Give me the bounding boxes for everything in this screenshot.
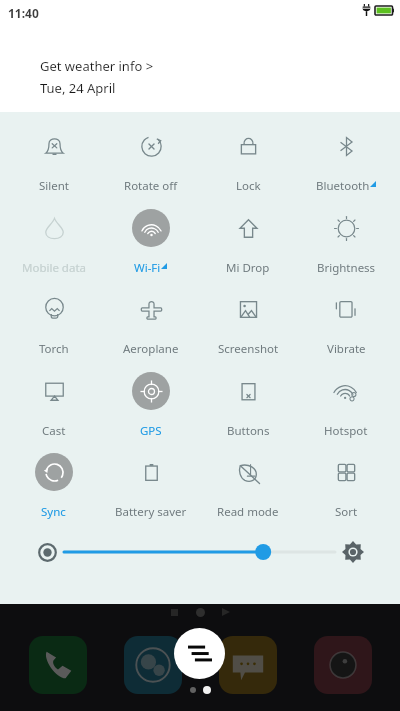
staticText: Lock [236,178,261,194]
staticText: Mi Drop [226,260,270,276]
staticText: Mobile data [22,260,86,276]
button[interactable]: Lock [199,126,297,198]
button[interactable]: Messaging [219,636,277,694]
button[interactable]: Browser [124,636,182,694]
staticText: Sort [335,504,358,520]
button[interactable]: Home [187,605,213,619]
button[interactable]: Sync [5,452,102,524]
staticText: GPS [140,423,162,439]
button[interactable]: Camera [314,636,372,694]
button[interactable]: Mi Drop [199,208,297,280]
staticText: Battery saver [115,504,187,520]
staticText: Tue, 24 April [40,79,116,97]
staticText: Rotate off [124,178,178,194]
staticText: Read mode [217,504,279,520]
staticText: Torch [39,341,69,357]
staticText: Screenshot [218,341,279,357]
button[interactable]: Hotspot [297,371,395,443]
button[interactable]: Vibrate [297,289,395,361]
button[interactable]: Auto brightness [35,540,59,564]
staticText: 11:40 [8,5,39,21]
button[interactable]: Read mode [199,452,297,524]
staticText: Sync [41,504,66,520]
button[interactable]: Cast [5,371,102,443]
button[interactable]: Silent [5,126,102,198]
staticText: Aeroplane [123,341,179,357]
button[interactable]: Get weather info > [40,57,154,75]
staticText: Buttons [227,423,270,439]
staticText: Cast [42,423,66,439]
button[interactable]: Wi-Fi [102,208,199,280]
staticText: Hotspot [324,423,368,439]
button[interactable]: Rotate off [102,126,199,198]
button[interactable]: Recents [161,605,187,619]
staticText: Bluetooth [316,178,370,194]
button[interactable]: Aeroplane [102,289,199,361]
button[interactable]: Back [213,605,239,619]
button[interactable]: Brightness settings [341,540,365,564]
button[interactable]: Torch [5,289,102,361]
button[interactable]: Mobile data [5,208,102,280]
staticText: Wi-Fi [134,260,161,276]
staticText: Brightness [317,260,376,276]
button[interactable]: Phone [29,636,87,694]
staticText: Silent [39,178,69,194]
button[interactable]: Brightness slider [64,542,335,562]
button[interactable]: Quick settings shortcut [174,628,225,679]
staticText: Vibrate [327,341,366,357]
button[interactable]: Sort [297,452,395,524]
button[interactable]: Bluetooth [297,126,395,198]
button[interactable]: Screenshot [199,289,297,361]
button[interactable]: Buttons [199,371,297,443]
button[interactable]: GPS [102,371,199,443]
button[interactable]: Battery saver [102,452,199,524]
button[interactable]: Brightness [297,208,395,280]
